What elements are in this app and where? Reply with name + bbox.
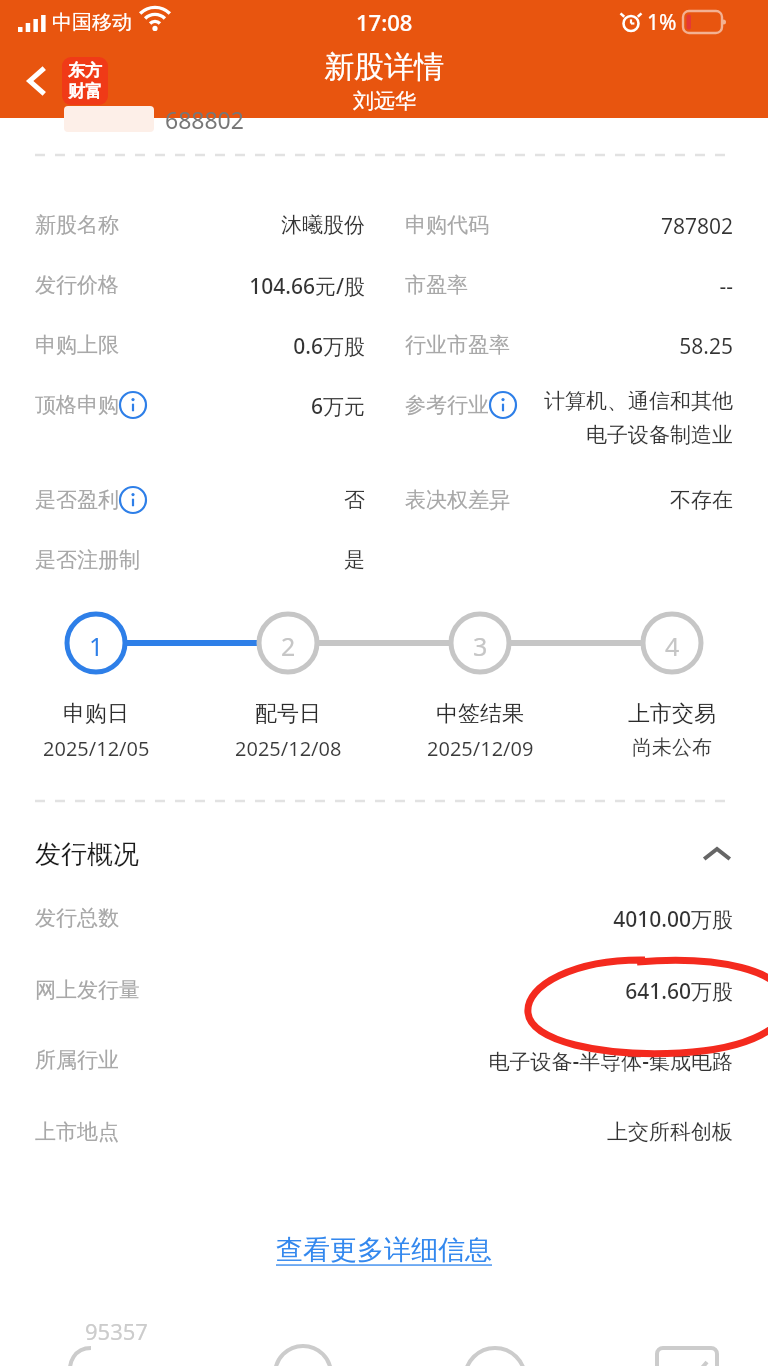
- staticText: 787802: [533, 212, 733, 241]
- staticText: 1%: [647, 8, 677, 37]
- staticText: 申购日: [63, 700, 129, 728]
- staticText: 新股名称: [35, 212, 119, 238]
- staticText: 不存在: [533, 487, 733, 513]
- staticText: 参考行业: [405, 392, 489, 418]
- staticText: 网上发行量: [35, 977, 140, 1003]
- button[interactable]: 返回: [14, 44, 118, 118]
- button[interactable]: 帮助: [384, 1316, 576, 1366]
- staticText: 上市交易: [628, 700, 716, 728]
- staticText: 2025/12/05: [43, 735, 150, 762]
- staticText: 是: [165, 547, 365, 573]
- button[interactable]: 意见反馈: [576, 1316, 768, 1366]
- staticText: 4010.00万股: [433, 905, 733, 934]
- staticText: 沐曦股份: [165, 212, 365, 238]
- staticText: 641.60万股: [433, 977, 733, 1006]
- button[interactable]: 在线客服: [192, 1316, 384, 1366]
- staticText: 发行总数: [35, 905, 119, 931]
- staticText: 发行概况: [35, 838, 139, 871]
- staticText: 否: [165, 487, 365, 513]
- staticText: 上市地点: [35, 1119, 119, 1145]
- button[interactable]: 查看更多详细信息: [0, 1222, 768, 1278]
- staticText: 刘远华: [353, 88, 416, 114]
- staticText: 尚未公布: [632, 735, 712, 760]
- staticText: 104.66元/股: [135, 272, 365, 301]
- staticText: 95357: [85, 1316, 148, 1346]
- staticText: 0.6万股: [165, 332, 365, 361]
- staticText: 配号日: [255, 700, 321, 728]
- staticText: 计算机、通信和其他电子设备制造业: [533, 388, 733, 449]
- staticText: 行业市盈率: [405, 332, 510, 358]
- staticText: 查看更多详细信息: [276, 1233, 492, 1267]
- staticText: 3: [473, 629, 488, 663]
- staticText: 市盈率: [405, 272, 468, 298]
- staticText: 表决权差异: [405, 487, 510, 513]
- staticText: 中国移动: [52, 10, 132, 35]
- staticText: 上交所科创板: [433, 1119, 733, 1145]
- button[interactable]: 发行概况: [0, 826, 768, 882]
- staticText: 申购上限: [35, 332, 119, 358]
- staticText: 是否注册制: [35, 547, 140, 573]
- staticText: 1: [89, 629, 104, 663]
- other: 收起: [701, 844, 733, 864]
- staticText: 财富: [68, 81, 102, 102]
- staticText: 申购代码: [405, 212, 489, 238]
- staticText: 是否盈利: [35, 487, 119, 513]
- staticText: 新股详情: [324, 48, 444, 86]
- staticText: 17:08: [356, 7, 413, 37]
- staticText: 中签结果: [436, 700, 524, 728]
- staticText: 东方: [68, 60, 102, 81]
- staticText: --: [533, 272, 733, 301]
- staticText: 2025/12/09: [427, 735, 534, 762]
- staticText: 6万元: [165, 392, 365, 421]
- staticText: 电子设备-半导体-集成电路: [333, 1047, 733, 1076]
- staticText: 4: [665, 629, 680, 663]
- staticText: 2: [281, 629, 296, 663]
- staticText: 688802: [165, 104, 244, 135]
- staticText: 发行价格: [35, 272, 119, 298]
- staticText: 2025/12/08: [235, 735, 342, 762]
- staticText: 顶格申购: [35, 392, 119, 418]
- button[interactable]: 客服电话: [0, 1316, 192, 1366]
- staticText: 所属行业: [35, 1047, 119, 1073]
- staticText: 58.25: [533, 332, 733, 361]
